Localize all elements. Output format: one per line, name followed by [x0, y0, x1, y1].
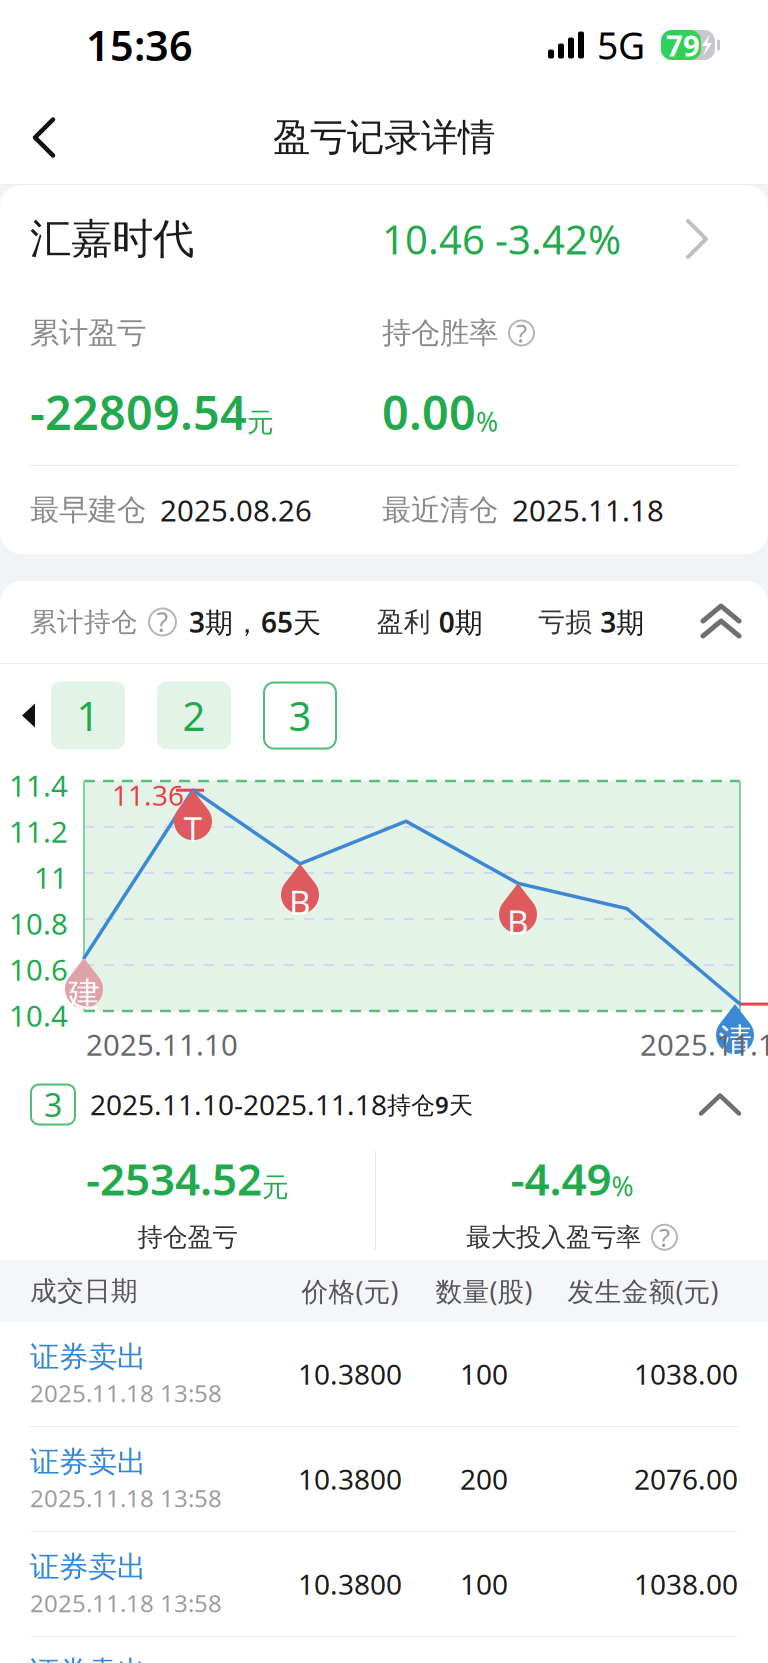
- staticText: 11.36: [112, 776, 184, 813]
- staticText: 10.3800: [298, 1460, 402, 1498]
- staticText: ?: [516, 316, 527, 350]
- staticText: T: [183, 806, 202, 850]
- staticText: 盈利: [377, 606, 431, 638]
- staticText: 10.4: [9, 996, 68, 1035]
- staticText: 证券卖出: [30, 1549, 146, 1585]
- staticText: 200: [460, 1460, 508, 1498]
- staticText: 最近清仓: [382, 492, 498, 528]
- button[interactable]: Back: [12, 105, 76, 169]
- staticText: 证券卖出: [30, 1444, 146, 1480]
- staticText: 数量(股): [435, 1273, 532, 1309]
- staticText: B: [289, 880, 311, 924]
- staticText: -22809.54: [30, 381, 247, 443]
- staticText: 1038.00: [634, 1355, 738, 1393]
- staticText: %: [476, 404, 498, 439]
- button[interactable]: 3: [0, 1067, 768, 1142]
- staticText: 2025.08.26: [160, 490, 312, 529]
- staticText: 持仓胜率: [382, 315, 498, 351]
- staticText: 成交日期: [30, 1275, 138, 1307]
- button[interactable]: 3: [263, 681, 337, 749]
- staticText: 建: [67, 974, 100, 1015]
- staticText: 最早建仓: [30, 492, 146, 528]
- staticText: 3期: [600, 603, 644, 641]
- staticText: 3: [288, 689, 311, 742]
- staticText: 11: [34, 858, 68, 897]
- staticText: -4.49: [510, 1149, 611, 1208]
- staticText: 2025.11.18 13:58: [30, 1587, 222, 1619]
- staticText: 10.6: [9, 950, 68, 989]
- staticText: 0期: [439, 603, 483, 641]
- staticText: 11.2: [9, 812, 68, 851]
- staticText: -2534.52: [86, 1149, 262, 1208]
- staticText: 累计持仓: [30, 606, 138, 638]
- staticText: 2025.11.18: [640, 1025, 768, 1064]
- button[interactable]: 2: [157, 681, 231, 749]
- staticText: 15:36: [86, 18, 193, 72]
- staticText: 10.3800: [298, 1565, 402, 1603]
- button[interactable]: 1: [51, 681, 125, 749]
- staticText: 1: [76, 689, 99, 742]
- staticText: 2: [182, 689, 205, 742]
- staticText: 0.00: [382, 381, 476, 443]
- staticText: 累计盈亏: [30, 315, 146, 351]
- staticText: 100: [460, 1565, 508, 1603]
- staticText: 2025.11.10: [86, 1025, 238, 1064]
- staticText: 10.8: [9, 904, 68, 943]
- staticText: 发生金额(元): [567, 1273, 718, 1309]
- button[interactable]: 累计持仓: [0, 581, 768, 663]
- staticText: 持仓9天: [387, 1089, 473, 1120]
- staticText: 证券卖出: [30, 1654, 146, 1663]
- staticText: ?: [156, 604, 168, 640]
- staticText: 10.46 -3.42%: [382, 212, 621, 265]
- staticText: 2025.11.10-2025.11.18: [90, 1086, 387, 1123]
- staticText: 亏损: [538, 606, 592, 638]
- staticText: 5G: [597, 20, 645, 70]
- staticText: 79: [666, 25, 700, 64]
- staticText: 10.3800: [298, 1355, 402, 1393]
- staticText: 元: [247, 406, 274, 439]
- staticText: 2025.11.18: [512, 490, 664, 529]
- staticText: 100: [460, 1355, 508, 1393]
- staticText: %: [611, 1168, 633, 1204]
- staticText: B: [507, 899, 529, 944]
- staticText: 3期，65天: [189, 603, 321, 641]
- button[interactable]: 汇嘉时代: [0, 185, 768, 293]
- staticText: 持仓盈亏: [137, 1222, 237, 1253]
- staticText: 价格(元): [301, 1273, 398, 1309]
- staticText: 清: [718, 1020, 751, 1061]
- staticText: 2025.11.18 13:58: [30, 1377, 222, 1409]
- staticText: ?: [659, 1220, 670, 1254]
- staticText: 最大投入盈亏率: [466, 1222, 641, 1253]
- staticText: 2025.11.18 13:58: [30, 1482, 222, 1514]
- staticText: 2076.00: [634, 1460, 738, 1498]
- staticText: 汇嘉时代: [30, 214, 194, 264]
- staticText: 11.4: [9, 766, 68, 805]
- staticText: 证券卖出: [30, 1339, 146, 1375]
- staticText: 3: [44, 1083, 62, 1126]
- staticText: 元: [262, 1171, 289, 1204]
- staticText: 1038.00: [634, 1565, 738, 1603]
- staticText: 盈亏记录详情: [273, 115, 495, 160]
